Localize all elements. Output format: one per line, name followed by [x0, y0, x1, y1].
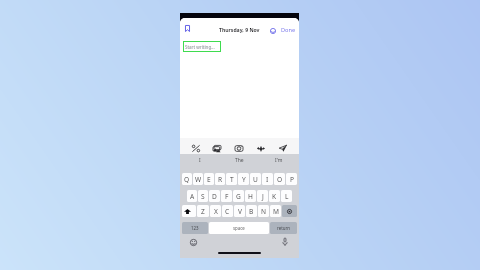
button[interactable]: J: [257, 190, 268, 202]
staticText: Y: [242, 175, 246, 184]
staticText: O: [277, 175, 283, 184]
staticText: F: [225, 192, 229, 201]
staticText: T: [230, 175, 234, 184]
staticText: return: [277, 225, 291, 231]
staticText: J: [262, 192, 264, 201]
button[interactable]: K: [269, 190, 280, 202]
button[interactable]: Photos: [211, 142, 223, 154]
staticText: I: [266, 175, 269, 184]
button[interactable]: B: [246, 205, 257, 217]
staticText: U: [253, 175, 258, 184]
button[interactable]: I: [180, 154, 219, 167]
staticText: V: [238, 207, 242, 216]
button[interactable]: L: [281, 190, 292, 202]
button[interactable]: I: [262, 173, 273, 185]
button[interactable]: Camera: [233, 142, 245, 154]
button[interactable]: F: [221, 190, 232, 202]
staticText: Done: [281, 26, 296, 34]
staticText: Z: [201, 207, 205, 216]
staticText: D: [212, 192, 217, 201]
staticText: P: [290, 175, 294, 184]
button[interactable]: Bookmark: [183, 24, 192, 33]
button[interactable]: H: [245, 190, 256, 202]
staticText: H: [248, 192, 253, 201]
button[interactable]: Z: [197, 205, 209, 217]
staticText: N: [261, 207, 267, 216]
button[interactable]: return: [270, 222, 297, 234]
button[interactable]: Shift: [182, 205, 196, 217]
button[interactable]: Format: [190, 142, 202, 154]
button[interactable]: Y: [238, 173, 249, 185]
staticText: X: [214, 207, 218, 216]
button[interactable]: V: [234, 205, 245, 217]
button[interactable]: Q: [182, 173, 192, 185]
staticText: E: [207, 175, 211, 184]
button[interactable]: Dictation: [280, 237, 290, 247]
staticText: M: [273, 207, 279, 216]
staticText: I: [199, 157, 201, 164]
staticText: R: [218, 175, 223, 184]
staticText: C: [225, 207, 230, 216]
button[interactable]: Backspace: [282, 205, 297, 217]
button[interactable]: C: [222, 205, 233, 217]
button[interactable]: R: [215, 173, 225, 185]
staticText: L: [285, 192, 289, 201]
staticText: A: [190, 192, 195, 201]
button[interactable]: D: [209, 190, 220, 202]
button[interactable]: I'm: [259, 154, 299, 167]
button[interactable]: S: [198, 190, 208, 202]
staticText: 123: [191, 225, 199, 231]
staticText: G: [236, 192, 241, 201]
button[interactable]: space: [209, 222, 269, 234]
button[interactable]: Done: [280, 24, 297, 36]
staticText: Start writing...: [185, 44, 215, 50]
button[interactable]: W: [193, 173, 203, 185]
staticText: S: [201, 192, 205, 201]
button[interactable]: G: [233, 190, 244, 202]
button[interactable]: O: [274, 173, 285, 185]
button[interactable]: Emoji keyboard: [188, 237, 198, 247]
button[interactable]: U: [250, 173, 261, 185]
button[interactable]: Emoji: [268, 26, 277, 35]
button[interactable]: Sparkle: [255, 142, 267, 154]
staticText: I'm: [275, 157, 283, 164]
staticText: Thursday, 9 Nov: [219, 27, 260, 34]
staticText: W: [195, 175, 202, 184]
button[interactable]: A: [187, 190, 197, 202]
button[interactable]: X: [210, 205, 221, 217]
button[interactable]: P: [286, 173, 297, 185]
staticText: K: [272, 192, 277, 201]
staticText: space: [233, 225, 245, 231]
staticText: Q: [184, 175, 190, 184]
button[interactable]: Start writing...: [183, 41, 221, 52]
button[interactable]: T: [226, 173, 237, 185]
staticText: The: [235, 157, 244, 164]
button[interactable]: Send: [277, 142, 289, 154]
staticText: B: [249, 207, 254, 216]
button[interactable]: N: [258, 205, 269, 217]
button[interactable]: M: [270, 205, 281, 217]
button[interactable]: E: [204, 173, 214, 185]
button[interactable]: 123: [182, 222, 208, 234]
button[interactable]: The: [219, 154, 259, 167]
